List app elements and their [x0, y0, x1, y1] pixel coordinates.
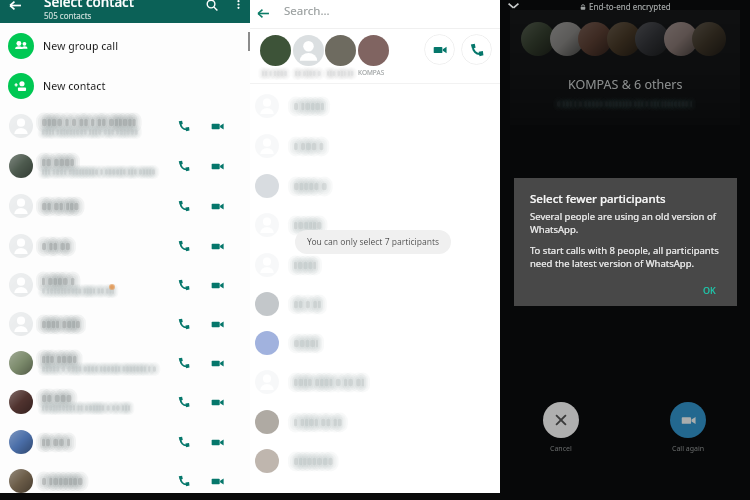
- button[interactable]: [293, 35, 324, 66]
- button[interactable]: OK: [700, 281, 719, 299]
- button[interactable]: Voice call: [461, 34, 492, 65]
- button[interactable]: [250, 205, 500, 244]
- button[interactable]: [250, 323, 500, 362]
- button[interactable]: [250, 86, 500, 125]
- button[interactable]: [260, 35, 291, 66]
- button[interactable]: New group call: [0, 26, 250, 66]
- button[interactable]: Video call: [204, 468, 230, 494]
- staticText: New contact: [43, 79, 106, 93]
- button[interactable]: New contact: [0, 66, 250, 106]
- staticText: You can only select 7 participants: [307, 236, 440, 248]
- button[interactable]: [250, 126, 500, 165]
- button[interactable]: Voice call: [0, 265, 250, 304]
- button[interactable]: Voice call: [0, 422, 250, 461]
- staticText: To start calls with 8 people, all partic…: [530, 244, 719, 270]
- button[interactable]: Back: [250, 0, 276, 26]
- button[interactable]: [250, 284, 500, 323]
- button[interactable]: Search...: [278, 0, 500, 28]
- button[interactable]: Voice call: [0, 226, 250, 265]
- staticText: Search...: [284, 3, 330, 19]
- button[interactable]: Voice call: [0, 461, 250, 500]
- button[interactable]: More options: [226, 0, 250, 16]
- staticText: End-to-end encrypted: [589, 1, 671, 12]
- button[interactable]: Voice call: [0, 106, 250, 145]
- button[interactable]: Call again: [670, 402, 706, 438]
- staticText: Select fewer participants: [530, 191, 666, 207]
- button[interactable]: Voice call: [171, 350, 197, 376]
- staticText: 505 contacts: [44, 10, 92, 21]
- staticText: Call again: [672, 444, 705, 454]
- button[interactable]: Voice call: [0, 186, 250, 225]
- button[interactable]: Voice call: [171, 153, 197, 179]
- button[interactable]: Video call: [204, 272, 230, 298]
- button[interactable]: Video call: [204, 113, 230, 139]
- button[interactable]: Back: [2, 0, 28, 17]
- button[interactable]: [250, 166, 500, 205]
- button[interactable]: Voice call: [171, 233, 197, 259]
- button[interactable]: [325, 35, 356, 66]
- button[interactable]: [358, 35, 389, 66]
- button[interactable]: Video call: [204, 350, 230, 376]
- staticText: New group call: [43, 39, 118, 53]
- button[interactable]: Minimize: [501, 0, 525, 17]
- button[interactable]: [250, 362, 500, 401]
- button[interactable]: Voice call: [171, 272, 197, 298]
- button[interactable]: Voice call: [171, 468, 197, 494]
- button[interactable]: Voice call: [171, 429, 197, 455]
- button[interactable]: Voice call: [171, 311, 197, 337]
- button[interactable]: [250, 245, 500, 284]
- button[interactable]: [250, 402, 500, 441]
- button[interactable]: Voice call: [0, 304, 250, 343]
- button[interactable]: [250, 441, 500, 480]
- button[interactable]: Voice call: [171, 113, 197, 139]
- button[interactable]: Video call: [204, 193, 230, 219]
- button[interactable]: Cancel: [543, 402, 579, 438]
- button[interactable]: Video call: [204, 429, 230, 455]
- staticText: OK: [703, 284, 716, 296]
- button[interactable]: Video call: [204, 311, 230, 337]
- button[interactable]: Video call: [204, 233, 230, 259]
- button[interactable]: You can only select 7 participants: [295, 230, 451, 254]
- button[interactable]: Voice call: [0, 343, 250, 382]
- staticText: Cancel: [550, 444, 572, 454]
- button[interactable]: Voice call: [0, 382, 250, 421]
- button[interactable]: Video call: [424, 34, 455, 65]
- button[interactable]: Voice call: [0, 146, 250, 185]
- button[interactable]: Voice call: [171, 193, 197, 219]
- staticText: KOMPAS & 6 others: [568, 76, 683, 93]
- button[interactable]: Search: [199, 0, 225, 16]
- button[interactable]: Video call: [204, 389, 230, 415]
- staticText: Select contact: [44, 0, 134, 11]
- staticText: Several people are using an old version …: [530, 210, 716, 236]
- button[interactable]: Video call: [204, 153, 230, 179]
- button[interactable]: Voice call: [171, 389, 197, 415]
- staticText: KOMPAS: [358, 68, 385, 77]
